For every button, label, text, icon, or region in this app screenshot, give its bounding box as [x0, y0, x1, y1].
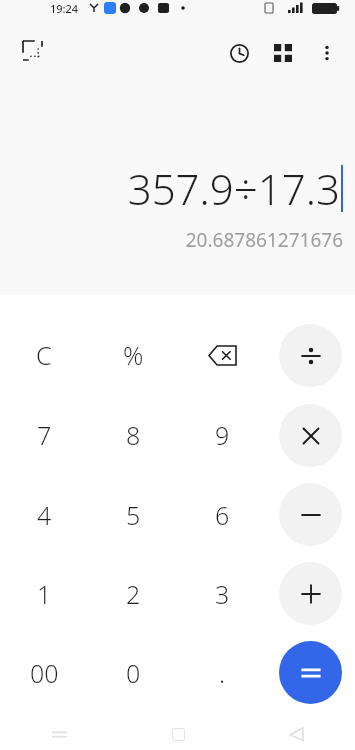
button[interactable]: C — [12, 323, 76, 387]
staticText: 3 — [215, 577, 230, 611]
staticText: 20.687861271676 — [185, 227, 343, 253]
button[interactable]: 3 — [190, 562, 254, 626]
button[interactable]: 6 — [190, 483, 254, 547]
button[interactable]: % — [101, 323, 165, 387]
button[interactable]: History — [217, 31, 261, 75]
button[interactable]: 9 — [190, 403, 254, 467]
button[interactable]: Converter — [261, 31, 305, 75]
button[interactable]: 8 — [101, 403, 165, 467]
button[interactable]: 7 — [12, 403, 76, 467]
button[interactable]: 00 — [12, 641, 76, 705]
staticText: 5 — [126, 498, 141, 532]
button[interactable]: . — [190, 641, 254, 705]
button[interactable]: Add — [279, 562, 342, 625]
button[interactable]: 2 — [101, 562, 165, 626]
staticText: . — [219, 656, 226, 690]
staticText: % — [123, 338, 144, 372]
button[interactable]: More options — [305, 31, 349, 75]
staticText: 8 — [126, 418, 141, 452]
staticText: 357.9÷17.3 — [127, 160, 340, 217]
staticText: C — [36, 338, 52, 372]
staticText: 2 — [126, 577, 141, 611]
button[interactable]: 5 — [101, 483, 165, 547]
staticText: 6 — [215, 498, 230, 532]
button[interactable]: 4 — [12, 483, 76, 547]
staticText: 7 — [37, 418, 52, 452]
staticText: 19:24 — [50, 1, 79, 16]
button[interactable]: 1 — [12, 562, 76, 626]
button[interactable]: Back — [237, 718, 355, 750]
staticText: 4 — [37, 498, 52, 532]
button[interactable]: Recents — [0, 718, 119, 750]
staticText: 0 — [126, 656, 141, 690]
button[interactable]: Subtract — [279, 483, 342, 546]
button[interactable]: Backspace — [190, 323, 254, 387]
button[interactable]: Screenshot — [10, 28, 54, 72]
button[interactable]: Multiply — [279, 404, 342, 467]
button[interactable]: 0 — [101, 641, 165, 705]
staticText: 1 — [37, 577, 52, 611]
button[interactable]: Equals — [279, 641, 342, 704]
button[interactable]: Divide — [279, 324, 342, 387]
staticText: 9 — [215, 418, 230, 452]
staticText: 00 — [30, 656, 59, 690]
